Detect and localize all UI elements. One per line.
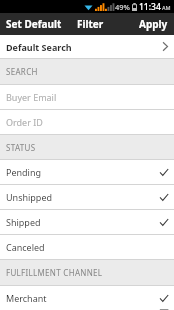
button[interactable]: Shipped [0,210,174,234]
staticText: Merchant [6,292,47,304]
staticText: SEARCH [6,66,38,77]
staticText: Filter [77,17,104,31]
staticText: Pending [6,166,42,178]
button[interactable]: Order ID [0,110,174,134]
button[interactable]: Filter [63,13,117,35]
button[interactable]: Buyer Email [0,85,174,109]
staticText: Canceled [6,241,45,253]
staticText: Apply [139,17,168,31]
staticText: Set Default [6,17,62,31]
staticText: STATUS [6,142,36,153]
staticText: AM [162,4,171,11]
staticText: FULFILLMENT CHANNEL [6,267,103,278]
button[interactable]: Set Default [0,13,63,35]
staticText: Unshipped [6,191,53,203]
button[interactable]: Apply [117,13,174,35]
other: Open default search [163,42,168,51]
staticText: Buyer Email [6,91,57,103]
staticText: Order ID [6,116,43,128]
button[interactable]: Merchant [0,286,174,310]
button[interactable]: Canceled [0,235,174,259]
button[interactable]: Unshipped [0,185,174,209]
staticText: 49% [115,2,130,12]
staticText: 11:34 [139,1,161,13]
button[interactable]: Pending [0,160,174,184]
button[interactable]: Default Search [0,35,174,58]
staticText: Shipped [6,216,41,228]
staticText: Default Search [6,41,72,53]
